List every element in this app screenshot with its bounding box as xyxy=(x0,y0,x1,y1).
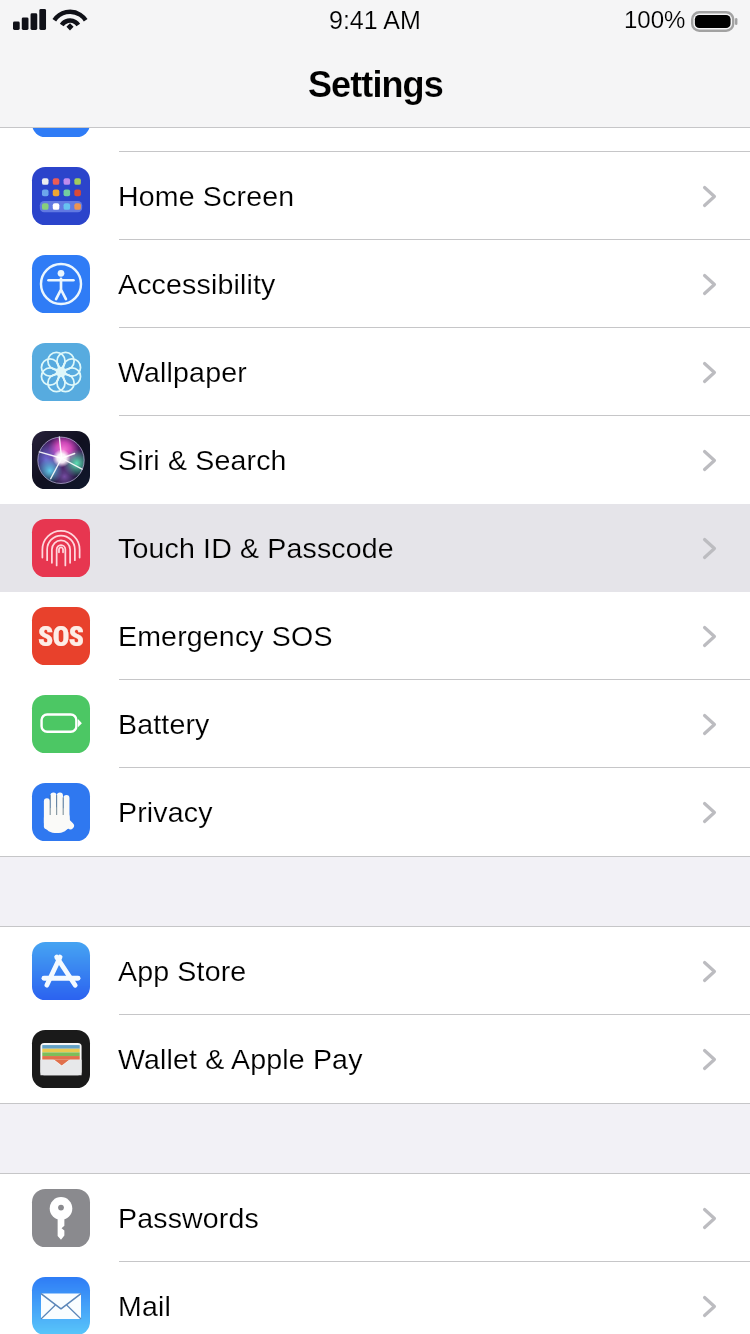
staticText: App Store xyxy=(118,955,247,987)
staticText: Battery xyxy=(118,708,210,740)
button[interactable]: Display & Brightness xyxy=(0,64,750,152)
staticText: Siri & Search xyxy=(118,444,287,476)
button[interactable]: Mail xyxy=(0,1262,750,1334)
staticText: Passwords xyxy=(118,1202,260,1234)
staticText: 9:41 AM xyxy=(329,6,421,34)
button[interactable]: Passwords xyxy=(0,1174,750,1262)
staticText: Privacy xyxy=(118,796,213,828)
staticText: Wallet & Apple Pay xyxy=(118,1043,363,1075)
button[interactable]: Wallet & Apple Pay xyxy=(0,1015,750,1103)
staticText: Touch ID & Passcode xyxy=(118,532,394,564)
staticText: Mail xyxy=(118,1290,171,1322)
staticText: Accessibility xyxy=(118,268,276,300)
button[interactable]: Wallpaper xyxy=(0,328,750,416)
staticText: Home Screen xyxy=(118,180,295,212)
staticText: Wallpaper xyxy=(118,356,247,388)
staticText: SOS xyxy=(38,620,84,652)
staticText: Emergency SOS xyxy=(118,620,333,652)
staticText: 100% xyxy=(624,6,686,33)
button[interactable]: Accessibility xyxy=(0,240,750,328)
button[interactable]: Home Screen xyxy=(0,152,750,240)
button[interactable]: Battery xyxy=(0,680,750,768)
button[interactable]: App Store xyxy=(0,927,750,1015)
button[interactable]: Privacy xyxy=(0,768,750,856)
button[interactable]: SOS xyxy=(0,592,750,680)
button[interactable]: Touch ID & Passcode xyxy=(0,504,750,592)
button[interactable]: Siri & Search xyxy=(0,416,750,504)
staticText: Settings xyxy=(308,64,443,104)
